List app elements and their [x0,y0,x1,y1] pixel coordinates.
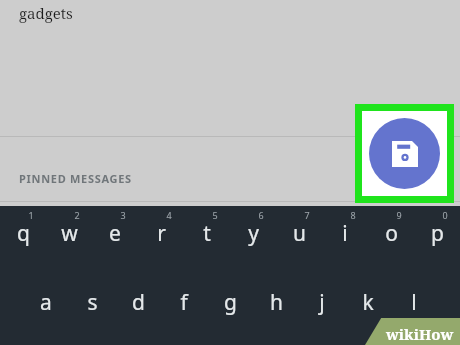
staticText: h [270,288,283,317]
button[interactable]: j [299,276,345,321]
staticText: PINNED MESSAGES [19,171,132,186]
staticText: w [61,219,78,248]
staticText: e [109,219,121,248]
staticText: 0 [442,209,448,221]
staticText: s [87,288,98,317]
button[interactable]: a [23,276,69,321]
staticText: d [132,288,145,317]
staticText: u [293,219,306,248]
button[interactable]: 9 [368,209,414,254]
staticText: 6 [258,209,264,221]
staticText: 8 [350,209,356,221]
staticText: 5 [212,209,218,221]
button[interactable]: d [115,276,161,321]
staticText: q [17,219,30,248]
staticText: g [224,288,237,317]
button[interactable]: Save [362,111,447,196]
staticText: r [157,219,166,248]
button[interactable]: 6 [230,209,276,254]
staticText: 7 [304,209,310,221]
staticText: j [319,288,325,317]
button[interactable]: h [253,276,299,321]
button[interactable]: 8 [322,209,368,254]
staticText: l [411,288,417,317]
staticText: 3 [120,209,126,221]
button[interactable]: s [69,276,115,321]
staticText: y [248,219,259,248]
staticText: 9 [396,209,402,221]
button[interactable]: 2 [46,209,92,254]
staticText: k [362,288,374,317]
button[interactable]: 1 [0,209,46,254]
staticText: 2 [74,209,80,221]
staticText: t [203,219,211,248]
staticText: o [385,219,398,248]
button[interactable]: 4 [138,209,184,254]
staticText: wiki [386,324,419,344]
staticText: 4 [166,209,172,221]
staticText: gadgets [19,3,73,23]
button[interactable]: f [161,276,207,321]
staticText: f [180,288,188,317]
button[interactable]: 0 [414,209,460,254]
button[interactable]: 7 [276,209,322,254]
staticText: How [419,324,454,344]
staticText: i [342,219,348,248]
button[interactable]: 3 [92,209,138,254]
staticText: a [40,288,52,317]
staticText: 1 [28,209,34,221]
button[interactable]: l [391,276,437,321]
button[interactable]: k [345,276,391,321]
staticText: p [431,219,444,248]
button[interactable]: g [207,276,253,321]
button[interactable]: 5 [184,209,230,254]
